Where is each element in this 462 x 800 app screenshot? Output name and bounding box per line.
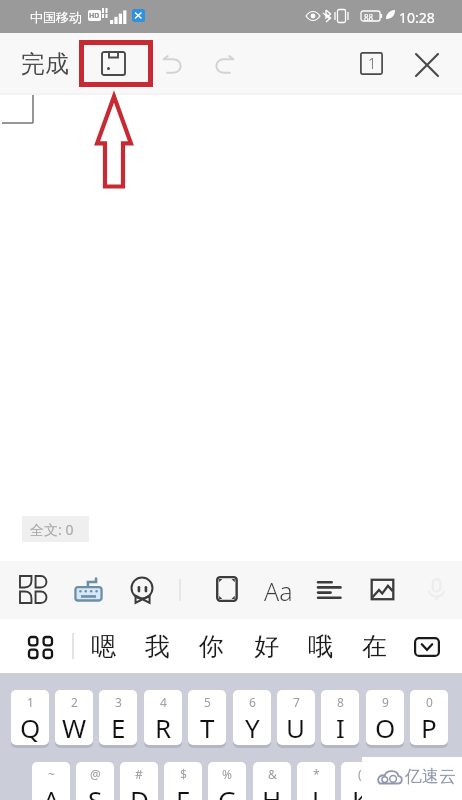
staticText: 5: [204, 694, 211, 710]
button[interactable]: Alignment: [316, 577, 342, 603]
staticText: E: [111, 710, 126, 745]
staticText: %: [222, 766, 232, 782]
staticText: 7: [293, 694, 300, 710]
button[interactable]: Symbols: [29, 637, 52, 658]
staticText: 4: [160, 694, 167, 710]
button[interactable]: Font size: [262, 572, 296, 608]
staticText: 在: [362, 631, 387, 662]
button[interactable]: Redo: [210, 50, 239, 79]
staticText: 10:28: [399, 8, 435, 27]
button[interactable]: 0: [410, 690, 448, 745]
staticText: R: [155, 710, 172, 745]
staticText: *: [313, 766, 320, 782]
staticText: 嗯: [91, 631, 116, 662]
staticText: P: [421, 710, 437, 745]
staticText: 8: [337, 694, 344, 710]
button[interactable]: 3: [99, 690, 137, 745]
button[interactable]: (: [341, 762, 379, 800]
staticText: 我: [145, 631, 170, 662]
button[interactable]: ~: [32, 762, 70, 800]
staticText: 好: [254, 631, 279, 662]
staticText: G: [218, 782, 237, 800]
button[interactable]: 嗯: [89, 628, 118, 664]
button[interactable]: Emoji: [128, 576, 156, 604]
staticText: @: [90, 766, 101, 782]
button[interactable]: Close: [411, 49, 443, 81]
button[interactable]: 5: [188, 690, 226, 745]
staticText: 1: [27, 694, 34, 710]
staticText: Q: [20, 710, 41, 745]
staticText: 9: [382, 694, 389, 710]
button[interactable]: Keyboard: [74, 575, 103, 604]
button[interactable]: %: [208, 762, 246, 800]
staticText: 中国移动: [30, 9, 82, 25]
button[interactable]: Voice input: [423, 576, 450, 603]
button[interactable]: 全文: 0: [22, 516, 89, 542]
button[interactable]: 4: [144, 690, 182, 745]
staticText: Y: [245, 710, 260, 745]
staticText: ~: [48, 766, 55, 782]
staticText: D: [130, 782, 149, 800]
staticText: Aa: [264, 574, 293, 608]
staticText: K: [352, 782, 369, 800]
button[interactable]: 在: [360, 628, 389, 664]
staticText: U: [286, 710, 306, 745]
staticText: F: [176, 782, 190, 800]
staticText: H: [262, 782, 282, 800]
staticText: &: [268, 766, 277, 782]
staticText: J: [312, 782, 320, 800]
staticText: $: [180, 766, 187, 782]
button[interactable]: Save: [79, 40, 153, 87]
button[interactable]: 9: [366, 690, 404, 745]
button[interactable]: Insert image: [369, 576, 396, 603]
staticText: O: [375, 710, 396, 745]
staticText: #: [135, 766, 143, 782]
button[interactable]: #: [120, 762, 158, 800]
button[interactable]: More candidates: [414, 637, 440, 657]
staticText: 亿速云: [405, 766, 456, 787]
staticText: 全文: 0: [30, 520, 74, 539]
staticText: W: [62, 710, 87, 745]
button[interactable]: $: [164, 762, 202, 800]
button[interactable]: 1: [11, 690, 49, 745]
staticText: 完成: [21, 49, 69, 79]
button[interactable]: 哦: [306, 628, 335, 664]
staticText: 1: [368, 54, 376, 73]
staticText: 哦: [308, 631, 333, 662]
button[interactable]: &: [253, 762, 291, 800]
button[interactable]: 好: [252, 628, 281, 664]
button[interactable]: Apps: [20, 576, 47, 603]
button[interactable]: Pages: [360, 52, 383, 75]
staticText: 0: [426, 694, 433, 710]
button[interactable]: Select page: [211, 576, 238, 603]
staticText: 6: [249, 694, 256, 710]
button[interactable]: 你: [197, 628, 226, 664]
staticText: HD: [89, 11, 100, 21]
staticText: (: [358, 766, 362, 782]
button[interactable]: 完成: [12, 46, 78, 82]
staticText: HD: [89, 11, 100, 21]
staticText: S: [88, 782, 103, 800]
button[interactable]: 8: [321, 690, 359, 745]
staticText: T: [200, 710, 215, 745]
staticText: 3: [115, 694, 122, 710]
button[interactable]: 2: [55, 690, 93, 745]
button[interactable]: 6: [233, 690, 271, 745]
staticText: 88: [364, 12, 374, 23]
staticText: A: [43, 782, 60, 800]
button[interactable]: 7: [277, 690, 315, 745]
staticText: 你: [199, 631, 224, 662]
button[interactable]: @: [76, 762, 114, 800]
staticText: 2: [71, 694, 78, 710]
button[interactable]: Undo: [157, 50, 186, 79]
staticText: I: [336, 710, 345, 745]
button[interactable]: 我: [143, 628, 172, 664]
button[interactable]: *: [297, 762, 335, 800]
